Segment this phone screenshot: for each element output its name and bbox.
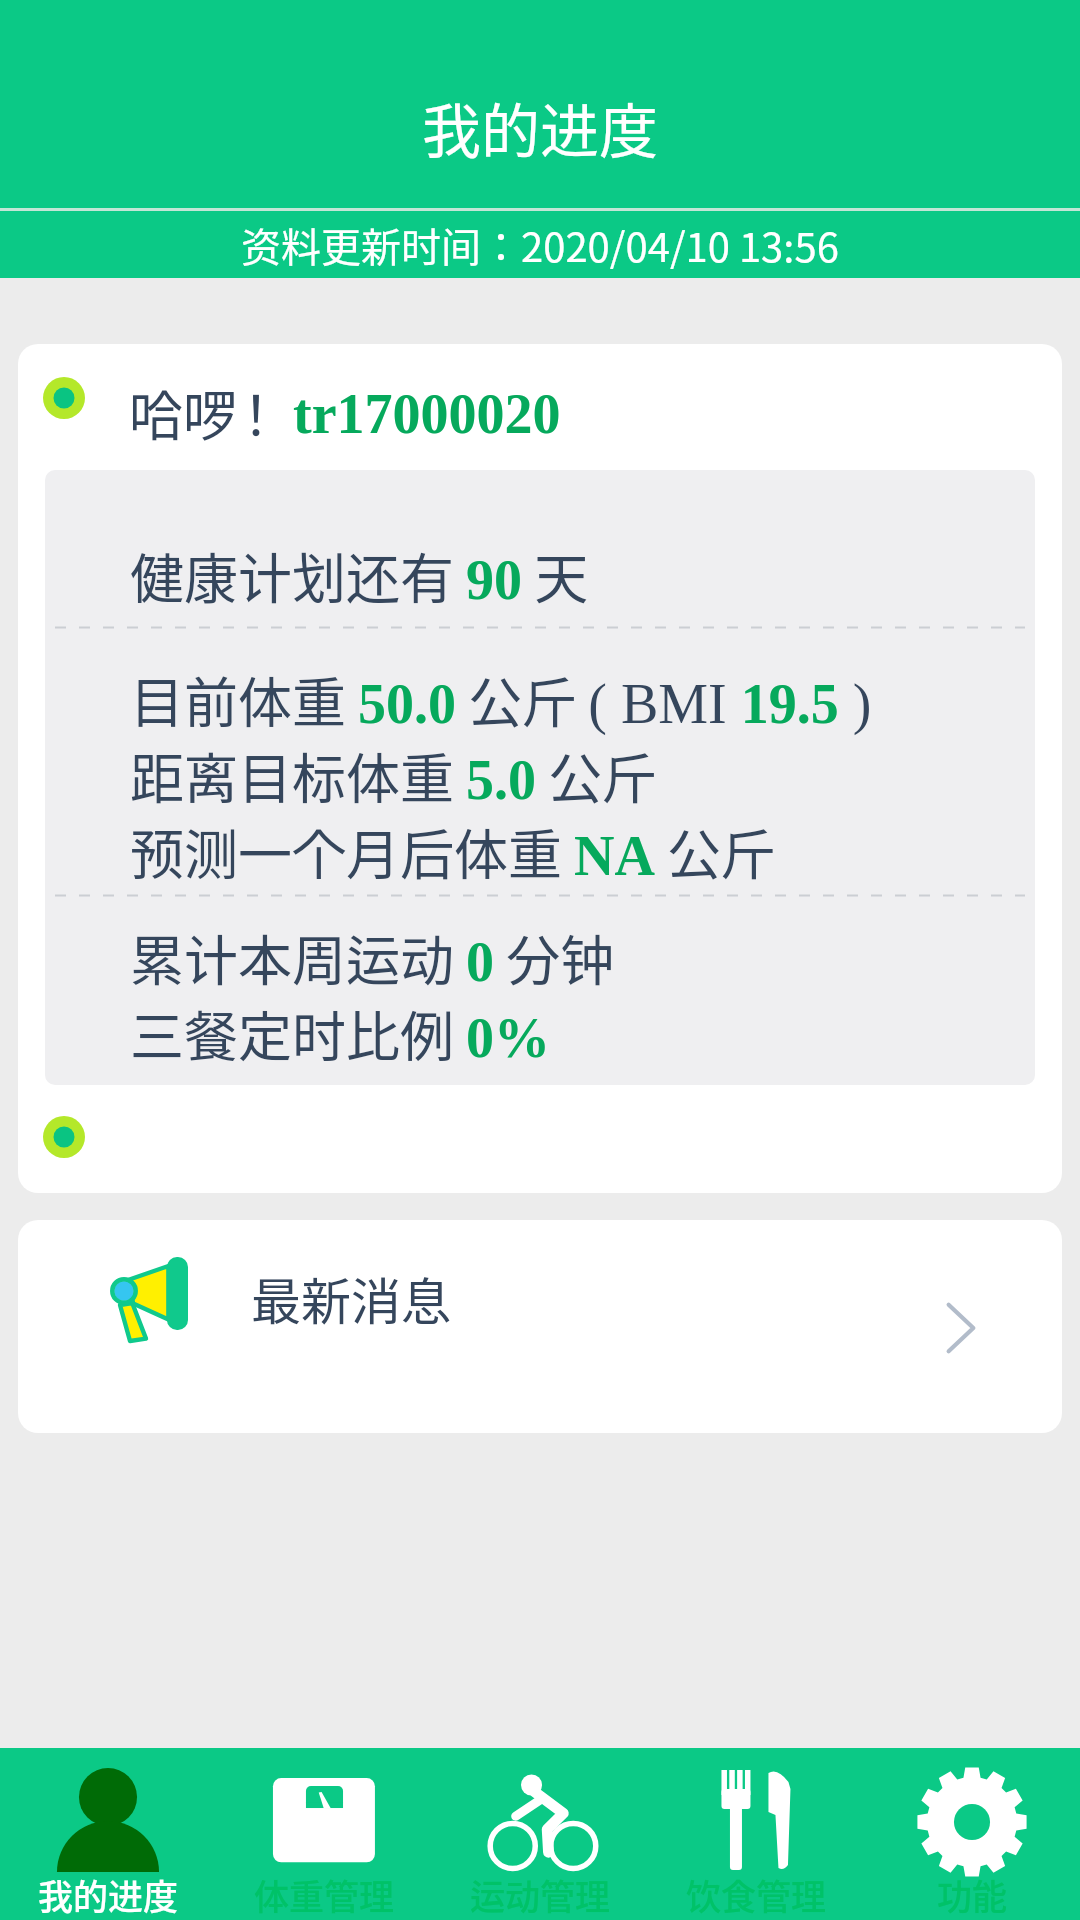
staticText: 饮食管理 bbox=[686, 1875, 827, 1919]
button[interactable]: 最新消息 bbox=[18, 1220, 1062, 1433]
staticText: 功能 bbox=[937, 1875, 1008, 1919]
staticText: 我的进度 bbox=[38, 1875, 179, 1919]
staticText: 目前体重 50.0 公斤 ( BMI 19.5 ) bbox=[130, 662, 872, 738]
staticText: 体重管理 bbox=[254, 1875, 395, 1919]
other: 我的进度 bbox=[53, 1767, 163, 1877]
staticText: ！ bbox=[229, 375, 283, 451]
staticText: 运动管理 bbox=[470, 1875, 611, 1919]
other: 运动管理 bbox=[485, 1767, 595, 1877]
button[interactable]: 哈啰 bbox=[18, 344, 1062, 1193]
other: 查看最新消息 bbox=[938, 1301, 976, 1355]
staticText: 累计本周运动 0 分钟 bbox=[130, 920, 615, 996]
other: 最新消息 bbox=[110, 1256, 190, 1343]
other: 体重管理 bbox=[269, 1767, 379, 1877]
staticText: 最新消息 bbox=[251, 1259, 451, 1335]
other: 功能 bbox=[917, 1767, 1027, 1877]
staticText: 哈啰 bbox=[129, 375, 237, 451]
button[interactable]: 功能 bbox=[864, 1748, 1080, 1920]
staticText: 距离目标体重 5.0 公斤 bbox=[130, 738, 657, 814]
button[interactable]: 体重管理 bbox=[216, 1748, 432, 1920]
button[interactable]: 运动管理 bbox=[432, 1748, 648, 1920]
staticText: 资料更新时间：2020/04/10 13:56 bbox=[241, 216, 839, 274]
staticText: 我的进度 bbox=[422, 85, 659, 170]
button[interactable]: 我的进度 bbox=[0, 1748, 216, 1920]
button[interactable]: 饮食管理 bbox=[648, 1748, 864, 1920]
staticText: 三餐定时比例 0% bbox=[130, 996, 551, 1072]
other: 饮食管理 bbox=[701, 1767, 811, 1877]
staticText: 预测一个月后体重 NA 公斤 bbox=[130, 814, 776, 890]
staticText: 健康计划还有 90 天 bbox=[130, 538, 589, 614]
staticText: tr17000020 bbox=[293, 373, 561, 449]
